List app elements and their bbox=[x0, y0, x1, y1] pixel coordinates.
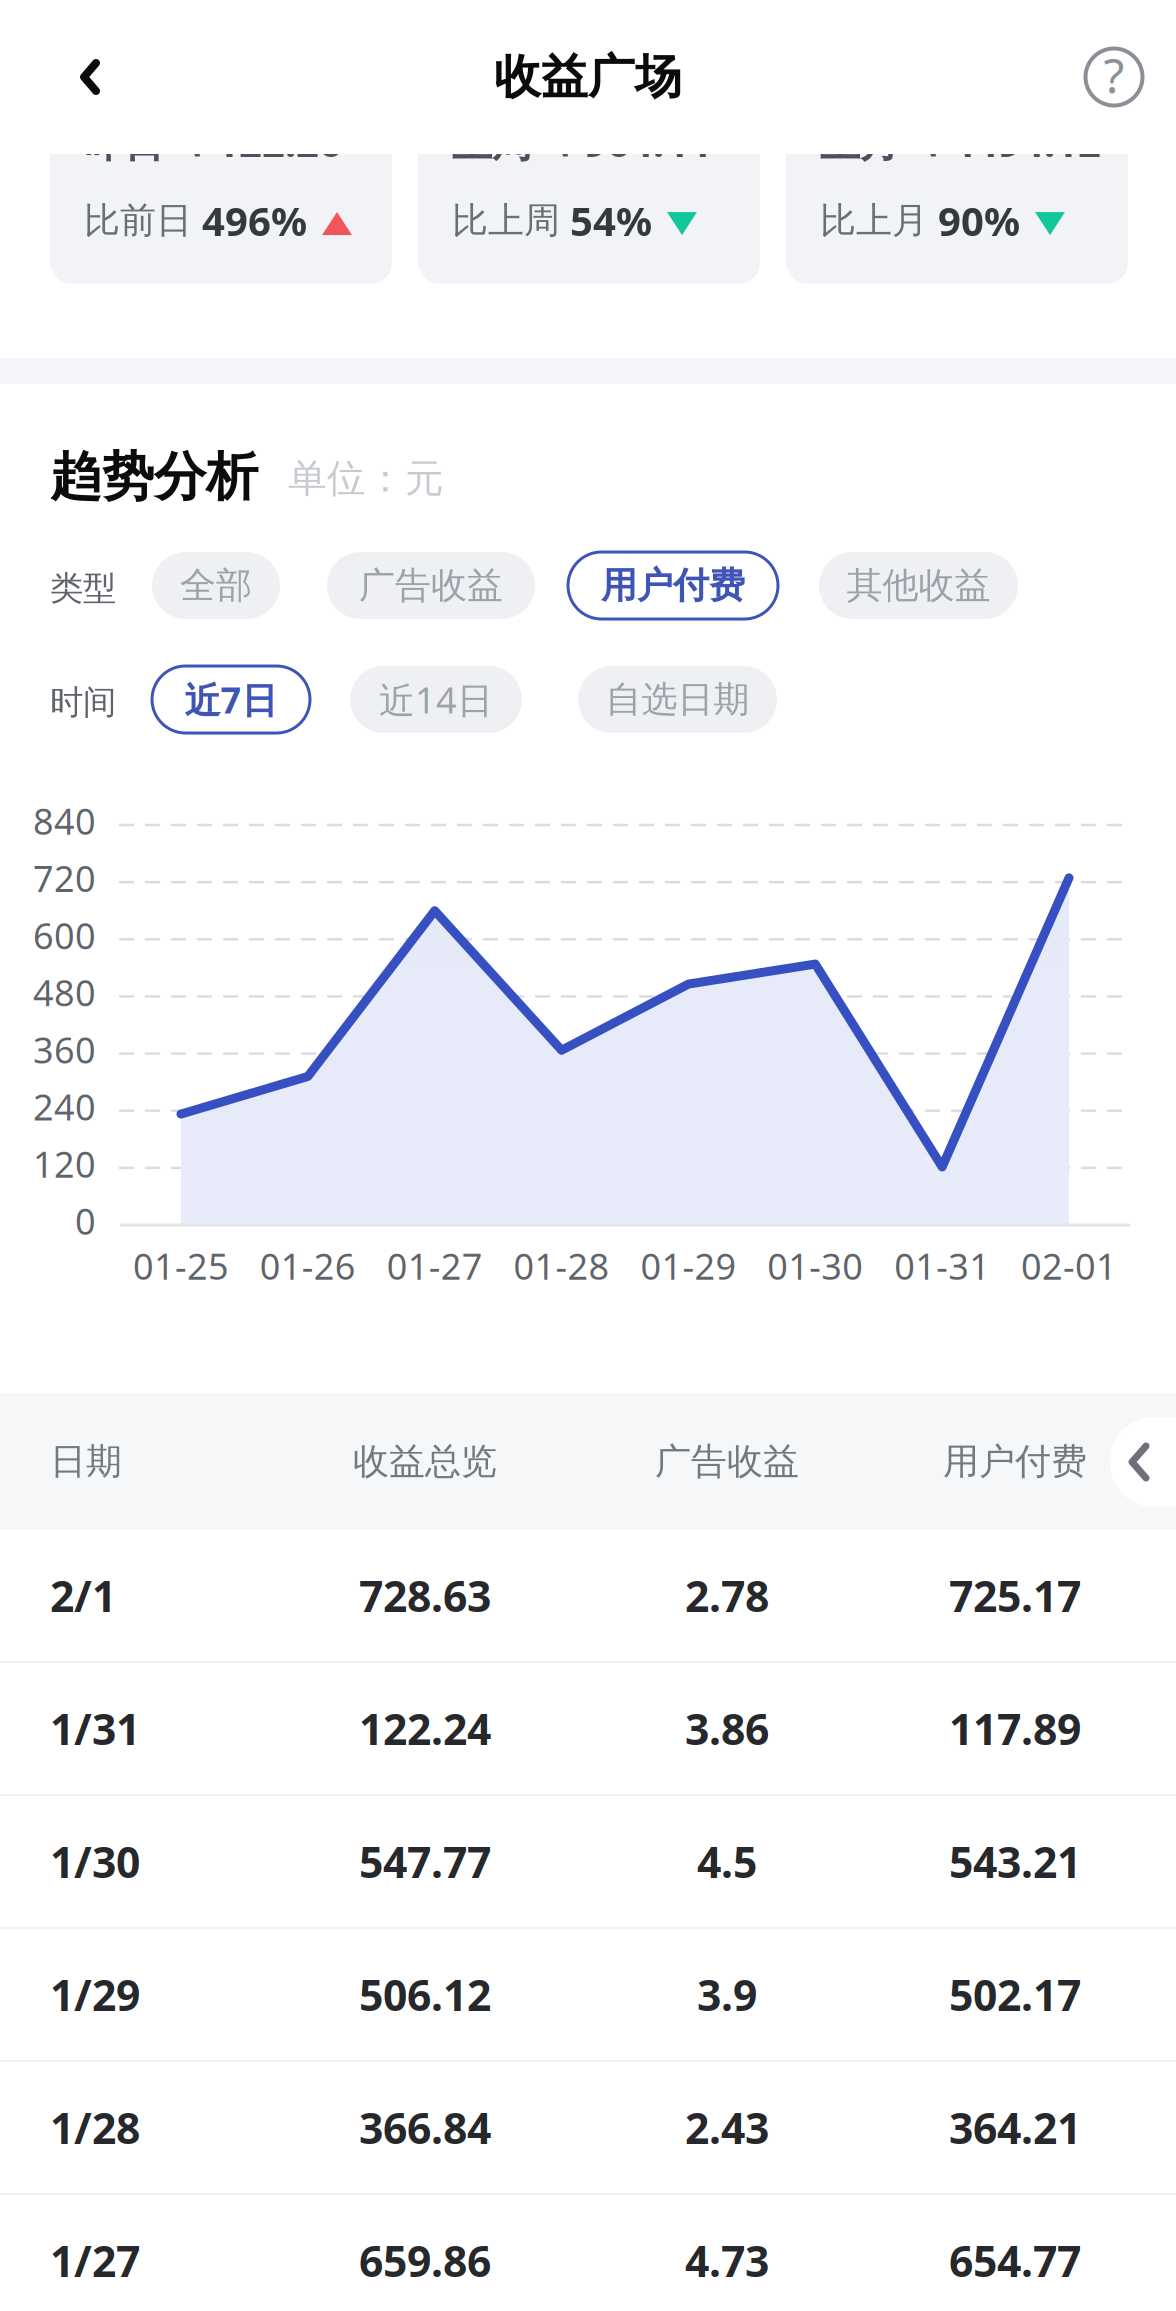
staticText: 收益广场 bbox=[494, 48, 682, 106]
staticText: 547.77 bbox=[359, 1833, 491, 1890]
button[interactable]: 全部 bbox=[152, 552, 280, 619]
staticText: 4.73 bbox=[685, 2232, 769, 2289]
staticText: 360 bbox=[33, 1026, 96, 1073]
staticText: 比上月 bbox=[820, 198, 928, 243]
staticText: 日期 bbox=[50, 1439, 122, 1484]
staticText: 上月 ￥4494.12 bbox=[820, 115, 1101, 168]
button[interactable]: Help bbox=[1064, 0, 1164, 154]
staticText: 用户付费 bbox=[943, 1439, 1087, 1484]
staticText: 比前日 bbox=[84, 198, 192, 243]
staticText: 364.21 bbox=[949, 2099, 1081, 2156]
staticText: 02-01 bbox=[1021, 1242, 1117, 1290]
staticText: 366.84 bbox=[359, 2099, 491, 2156]
staticText: 2.43 bbox=[685, 2099, 769, 2156]
staticText: 广告收益 bbox=[359, 563, 503, 608]
staticText: 全部 bbox=[180, 563, 252, 608]
staticText: 1/31 bbox=[50, 1700, 140, 1757]
staticText: 01-25 bbox=[133, 1242, 229, 1290]
staticText: 54% bbox=[570, 194, 652, 247]
staticText: 496% bbox=[202, 194, 307, 247]
staticText: 725.17 bbox=[949, 1567, 1081, 1624]
staticText: 1/29 bbox=[50, 1966, 140, 2023]
button[interactable]: 广告收益 bbox=[327, 552, 535, 619]
staticText: 543.21 bbox=[949, 1833, 1081, 1890]
staticText: 120 bbox=[33, 1140, 96, 1188]
staticText: 600 bbox=[33, 911, 96, 959]
staticText: 90% bbox=[938, 194, 1020, 247]
staticText: 单位：元 bbox=[288, 455, 444, 502]
staticText: 3.86 bbox=[685, 1700, 769, 1757]
staticText: 趋势分析 bbox=[50, 445, 258, 509]
staticText: 01-30 bbox=[767, 1242, 863, 1290]
staticText: 240 bbox=[33, 1083, 96, 1130]
staticText: 上周 ￥964.44 bbox=[452, 115, 710, 168]
staticText: 01-27 bbox=[387, 1242, 483, 1290]
staticText: 840 bbox=[33, 797, 96, 845]
staticText: 01-29 bbox=[640, 1242, 736, 1290]
staticText: 0 bbox=[75, 1197, 96, 1245]
staticText: 近14日 bbox=[379, 676, 493, 723]
staticText: 自选日期 bbox=[605, 677, 749, 722]
button[interactable]: 用户付费 bbox=[568, 552, 778, 619]
staticText: 1/27 bbox=[50, 2232, 140, 2289]
staticText: 1/28 bbox=[50, 2099, 140, 2156]
staticText: 1/30 bbox=[50, 1833, 140, 1890]
button[interactable]: 近14日 bbox=[350, 666, 522, 733]
button[interactable]: 近7日 bbox=[152, 666, 310, 733]
button[interactable]: 自选日期 bbox=[578, 666, 777, 733]
button[interactable]: Back bbox=[40, 0, 140, 154]
staticText: 728.63 bbox=[359, 1567, 491, 1624]
staticText: 广告收益 bbox=[655, 1439, 799, 1484]
staticText: 480 bbox=[33, 968, 96, 1016]
staticText: 01-28 bbox=[514, 1242, 610, 1290]
staticText: 122.24 bbox=[359, 1700, 491, 1757]
staticText: 01-26 bbox=[260, 1242, 356, 1290]
staticText: 01-31 bbox=[894, 1242, 990, 1290]
staticText: 收益总览 bbox=[353, 1439, 497, 1484]
staticText: 502.17 bbox=[949, 1966, 1081, 2023]
staticText: 昨日 ￥122.26 bbox=[84, 115, 342, 168]
staticText: 时间 bbox=[50, 682, 116, 723]
staticText: 近7日 bbox=[184, 676, 277, 723]
button[interactable]: Show more columns bbox=[1110, 1417, 1176, 1507]
staticText: 其他收益 bbox=[846, 563, 990, 608]
button[interactable]: 其他收益 bbox=[819, 552, 1018, 619]
staticText: 720 bbox=[33, 854, 96, 902]
staticText: 506.12 bbox=[359, 1966, 491, 2023]
staticText: 比上周 bbox=[452, 198, 560, 243]
staticText: 659.86 bbox=[359, 2232, 491, 2289]
staticText: 2.78 bbox=[685, 1567, 769, 1624]
staticText: 用户付费 bbox=[601, 563, 745, 608]
staticText: 117.89 bbox=[949, 1700, 1081, 1757]
staticText: 3.9 bbox=[697, 1966, 757, 2023]
staticText: 654.77 bbox=[949, 2232, 1081, 2289]
staticText: ? bbox=[1103, 43, 1124, 107]
staticText: 2/1 bbox=[50, 1567, 116, 1624]
staticText: 4.5 bbox=[697, 1833, 757, 1890]
staticText: 类型 bbox=[50, 568, 116, 609]
